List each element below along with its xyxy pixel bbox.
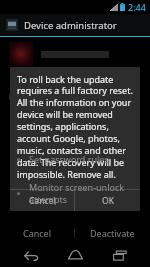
staticText: Cancel [23, 227, 52, 239]
button[interactable]: Recent apps [106, 243, 134, 267]
button[interactable]: Home [61, 243, 89, 267]
staticText: Cancel [29, 195, 56, 207]
staticText: Device administrator [24, 19, 117, 32]
staticText: Attention: [13, 74, 51, 85]
staticText: Monitor screen-unlock attempts [29, 181, 150, 205]
staticText: OK [102, 195, 114, 207]
button[interactable]: Deactivate [75, 223, 150, 243]
staticText: This threat is activated on device [22, 92, 137, 102]
staticText: To roll back the update requires a full … [17, 73, 133, 181]
staticText: Deactivate [90, 227, 135, 239]
button[interactable]: Back [17, 243, 45, 267]
button[interactable]: OK [75, 190, 140, 211]
staticText: Set password rules [29, 153, 109, 165]
button[interactable]: Cancel [0, 223, 74, 243]
button[interactable]: Cancel [10, 190, 74, 211]
staticText: 2:44 [128, 1, 146, 13]
